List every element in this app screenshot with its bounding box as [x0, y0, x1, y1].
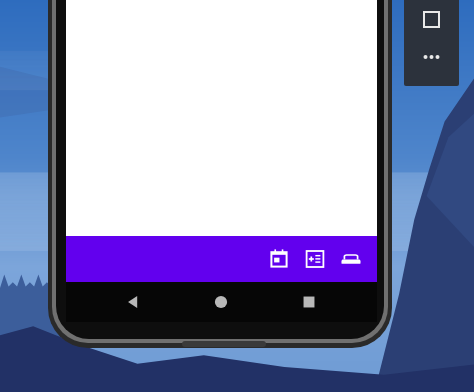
button[interactable]: Overlay controls — [404, 0, 459, 86]
button[interactable]: Inbox — [333, 236, 369, 282]
button[interactable]: Home — [208, 289, 234, 315]
button[interactable]: Events — [261, 236, 297, 282]
button[interactable]: Dashboard — [297, 236, 333, 282]
button[interactable]: Recent apps — [296, 289, 322, 315]
button[interactable]: Back — [120, 289, 146, 315]
